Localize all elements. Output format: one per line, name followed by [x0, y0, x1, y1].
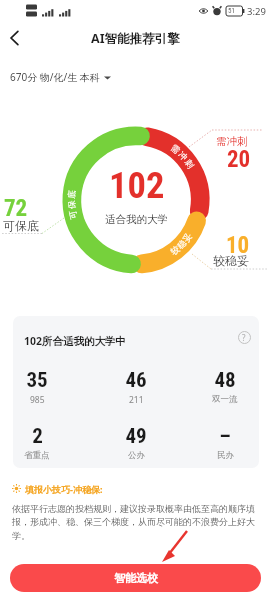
staticText: AI智能推荐引擎 — [91, 30, 180, 47]
staticText: 适合我的大学 — [105, 213, 168, 226]
staticText: 48 — [214, 368, 236, 393]
staticText: 985 — [30, 394, 45, 406]
staticText: 72 — [4, 195, 28, 222]
button[interactable]: Back — [0, 22, 32, 54]
staticText: 3:29 — [247, 5, 266, 18]
staticText: 省重点 — [24, 450, 50, 461]
staticText: 公办 — [128, 450, 145, 461]
staticText: 35 — [26, 368, 48, 393]
button[interactable]: 智能选校 — [10, 564, 261, 592]
button[interactable]: Help — [233, 326, 255, 348]
button[interactable]: 670分 物/化/生 本科 — [10, 70, 111, 84]
staticText: 2 — [32, 424, 43, 449]
staticText: 20 — [227, 146, 251, 173]
staticText: 211 — [129, 394, 144, 406]
staticText: 较稳妥 — [213, 253, 249, 268]
staticText: 46 — [125, 368, 147, 393]
staticText: 民办 — [217, 450, 234, 461]
staticText: 可保底 — [3, 218, 39, 233]
staticText: 670分 物/化/生 本科 — [10, 70, 100, 84]
staticText: 双一流 — [212, 394, 238, 405]
staticText: 依据平行志愿的投档规则，建议按录取概率由低至高的顺序填报，形成冲、稳、保三个梯度… — [12, 503, 264, 542]
staticText: 51 — [228, 7, 235, 15]
staticText: 智能选校 — [114, 571, 158, 585]
staticText: – — [219, 424, 231, 449]
staticText: 填报小技巧-冲稳保: — [25, 483, 103, 495]
staticText: 49 — [125, 424, 147, 449]
staticText: ? — [242, 332, 246, 343]
staticText: 需冲刺 — [216, 135, 248, 148]
staticText: 102 — [109, 164, 165, 207]
staticText: 10 — [226, 232, 250, 259]
staticText: 102所合适我的大学中 — [24, 334, 127, 348]
